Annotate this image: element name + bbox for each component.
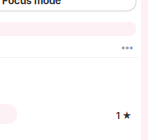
- button[interactable]: Focus mode: [0, 0, 59, 12]
- staticText: Focus mode: [2, 0, 61, 7]
- staticText: •••: [121, 41, 133, 53]
- button[interactable]: More options: [115, 38, 139, 56]
- staticText: 1 ★: [116, 110, 132, 121]
